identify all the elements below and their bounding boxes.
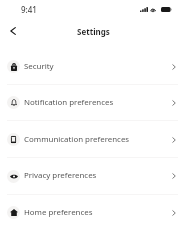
- button[interactable]: Back: [6, 24, 20, 38]
- staticText: Security: [24, 61, 54, 72]
- button[interactable]: Security: [0, 48, 186, 85]
- button[interactable]: Notification preferences: [0, 84, 186, 121]
- button[interactable]: Privacy preferences: [0, 157, 186, 195]
- staticText: Communication preferences: [24, 134, 130, 145]
- staticText: Privacy preferences: [24, 170, 97, 181]
- button[interactable]: Home preferences: [0, 194, 186, 231]
- staticText: Notification preferences: [24, 97, 114, 108]
- staticText: 9:41: [21, 4, 37, 15]
- staticText: Home preferences: [24, 207, 93, 218]
- button[interactable]: Communication preferences: [0, 121, 186, 158]
- staticText: Settings: [77, 26, 110, 37]
